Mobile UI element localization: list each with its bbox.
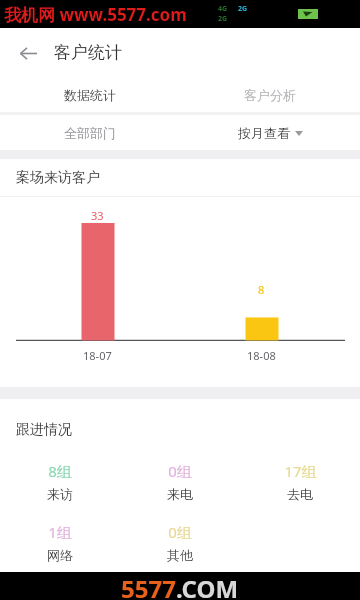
staticText: 1组: [48, 522, 72, 542]
staticText: 案场来访客户: [16, 169, 100, 187]
button[interactable]: 1组: [0, 520, 120, 565]
staticText: 跟进情况: [16, 421, 72, 439]
button[interactable]: 0组: [120, 520, 240, 565]
button[interactable]: 客户分析: [180, 77, 360, 112]
staticText: 2G: [218, 14, 228, 24]
button[interactable]: 全部部门: [0, 115, 180, 150]
staticText: 我机网 www.5577.com: [4, 3, 187, 26]
staticText: 18-08: [247, 348, 276, 363]
button[interactable]: 8组: [0, 459, 120, 504]
staticText: 全部部门: [64, 125, 116, 141]
staticText: 4G: [218, 4, 228, 14]
staticText: 8: [258, 282, 265, 297]
staticText: 2G: [238, 4, 248, 14]
staticText: 0组: [168, 522, 192, 542]
staticText: 8组: [48, 461, 72, 481]
staticText: 0组: [168, 461, 192, 481]
staticText: 5577: [121, 572, 176, 600]
staticText: 按月查看: [238, 125, 290, 141]
staticText: 去电: [287, 486, 313, 502]
staticText: 来访: [47, 486, 73, 502]
button[interactable]: 数据统计: [0, 77, 180, 112]
staticText: 18-07: [83, 348, 112, 363]
staticText: 来电: [167, 486, 193, 502]
button[interactable]: 0组: [120, 459, 240, 504]
staticText: 17组: [284, 461, 317, 481]
button[interactable]: Back: [8, 33, 48, 73]
staticText: 客户分析: [244, 87, 296, 103]
staticText: 其他: [167, 547, 193, 563]
staticText: 网络: [47, 547, 73, 563]
staticText: 客户统计: [54, 42, 122, 63]
button[interactable]: 17组: [240, 459, 360, 504]
button[interactable]: 按月查看: [180, 115, 360, 150]
staticText: .COM: [176, 572, 239, 600]
staticText: 33: [91, 208, 104, 223]
staticText: 数据统计: [64, 87, 116, 103]
